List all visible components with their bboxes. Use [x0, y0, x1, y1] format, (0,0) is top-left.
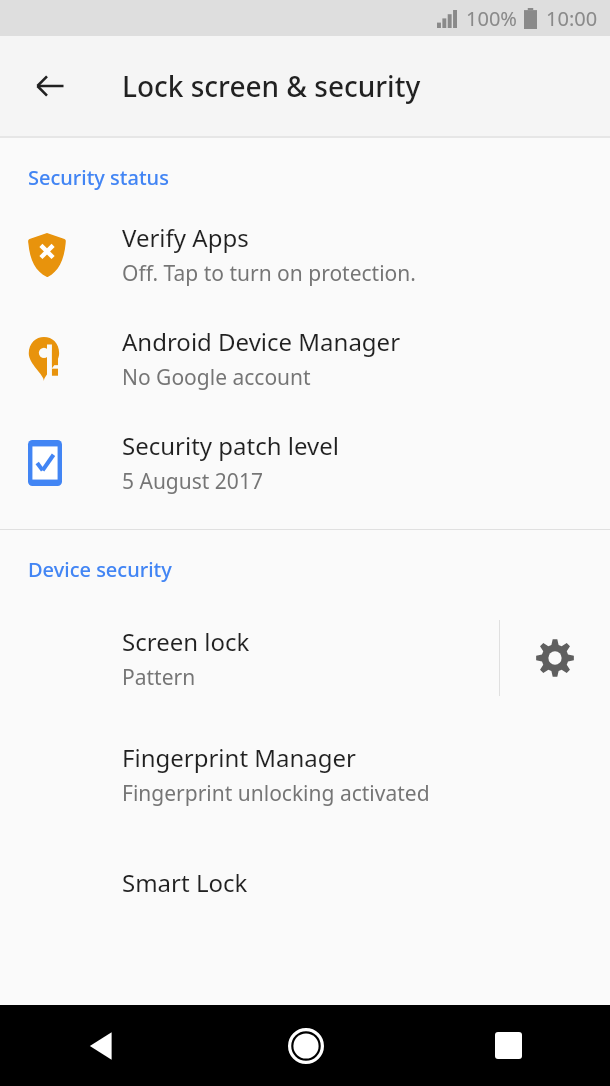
button[interactable]: Verify Apps: [0, 221, 610, 288]
button[interactable]: Home: [204, 1005, 407, 1086]
button[interactable]: Screen lock: [0, 625, 499, 692]
staticText: 10:00: [546, 5, 598, 32]
button[interactable]: Smart Lock: [0, 866, 610, 899]
staticText: Device security: [28, 556, 172, 583]
staticText: Smart Lock: [122, 866, 248, 899]
staticText: Lock screen & security: [122, 67, 421, 105]
button[interactable]: Recent apps: [407, 1005, 610, 1086]
staticText: Security patch level: [122, 429, 339, 462]
staticText: 5 August 2017: [122, 467, 263, 496]
staticText: Verify Apps: [122, 221, 249, 254]
staticText: 100%: [466, 5, 517, 32]
button[interactable]: Android Device Manager: [0, 325, 610, 392]
button[interactable]: Security patch level: [0, 429, 610, 496]
staticText: No Google account: [122, 363, 311, 392]
staticText: Off. Tap to turn on protection.: [122, 259, 416, 288]
button[interactable]: Back: [0, 1005, 204, 1086]
staticText: Pattern: [122, 663, 196, 692]
button[interactable]: Screen lock settings: [500, 613, 610, 703]
staticText: Android Device Manager: [122, 325, 401, 358]
staticText: Screen lock: [122, 625, 250, 658]
staticText: Fingerprint unlocking activated: [122, 779, 430, 808]
staticText: Security status: [28, 164, 169, 191]
button[interactable]: Fingerprint Manager: [0, 741, 610, 808]
staticText: Fingerprint Manager: [122, 741, 357, 774]
button[interactable]: Back: [20, 56, 80, 116]
